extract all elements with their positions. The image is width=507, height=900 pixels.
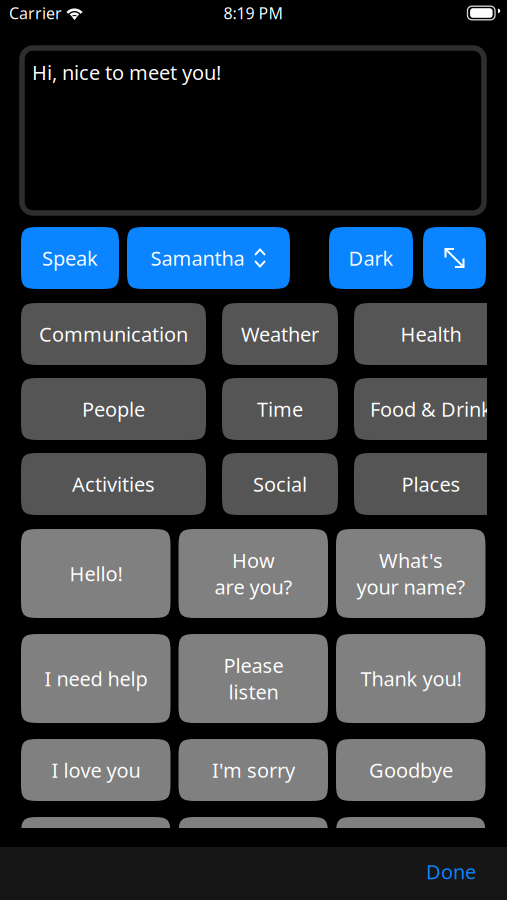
staticText: I love you <box>51 757 140 783</box>
staticText: Health <box>400 321 461 347</box>
staticText: What's your name? <box>356 547 465 600</box>
staticText: Time <box>257 396 303 422</box>
button[interactable]: Samantha <box>127 227 290 289</box>
button[interactable]: Maybe <box>336 817 485 879</box>
staticText: Weather <box>241 321 319 347</box>
button[interactable]: No <box>178 817 328 879</box>
button[interactable]: Dark <box>329 227 413 289</box>
staticText: I need help <box>44 665 147 692</box>
staticText: Yes <box>80 835 111 861</box>
button[interactable]: Places <box>354 453 507 515</box>
staticText: How are you? <box>214 547 292 600</box>
staticText: Carrier <box>9 2 62 24</box>
button[interactable]: Social <box>222 453 338 515</box>
button[interactable]: Activities <box>21 453 206 515</box>
staticText: 8:19 PM <box>223 2 283 24</box>
button[interactable]: Thank you! <box>336 634 485 723</box>
button[interactable]: Communication <box>21 303 206 365</box>
staticText: No <box>240 835 267 861</box>
button[interactable]: Speak <box>21 227 119 289</box>
button[interactable]: What's your name? <box>336 529 485 618</box>
staticText: Dark <box>348 245 393 271</box>
staticText: I'm sorry <box>212 757 295 783</box>
staticText: Social <box>253 471 307 497</box>
button[interactable]: Goodbye <box>336 739 485 801</box>
staticText: Hi, nice to meet you! <box>32 59 221 86</box>
button[interactable]: Time <box>222 378 338 440</box>
button[interactable]: Health <box>354 303 507 365</box>
staticText: Thank you! <box>360 665 461 692</box>
staticText: Goodbye <box>369 757 453 783</box>
staticText: Samantha <box>150 245 244 271</box>
staticText: Please listen <box>223 652 283 705</box>
button[interactable]: I love you <box>21 739 170 801</box>
button[interactable]: I need help <box>21 634 170 723</box>
staticText: Speak <box>42 245 98 271</box>
staticText: Done <box>426 858 476 885</box>
button[interactable]: Yes <box>21 817 170 879</box>
staticText: Hello! <box>69 560 122 587</box>
button[interactable]: Please listen <box>178 634 328 723</box>
button[interactable]: People <box>21 378 206 440</box>
staticText: Food & Drink <box>370 396 492 422</box>
button[interactable]: Hello! <box>21 529 170 618</box>
button[interactable]: How are you? <box>178 529 328 618</box>
staticText: Communication <box>39 321 188 347</box>
button[interactable]: Weather <box>222 303 338 365</box>
button[interactable]: Food & Drink <box>354 378 507 440</box>
button[interactable]: I'm sorry <box>178 739 328 801</box>
button[interactable]: Done <box>406 846 507 900</box>
staticText: Maybe <box>380 835 442 861</box>
staticText: People <box>82 396 145 422</box>
staticText: Places <box>401 471 460 497</box>
staticText: Activities <box>72 471 155 497</box>
button[interactable]: Expand <box>423 227 486 289</box>
